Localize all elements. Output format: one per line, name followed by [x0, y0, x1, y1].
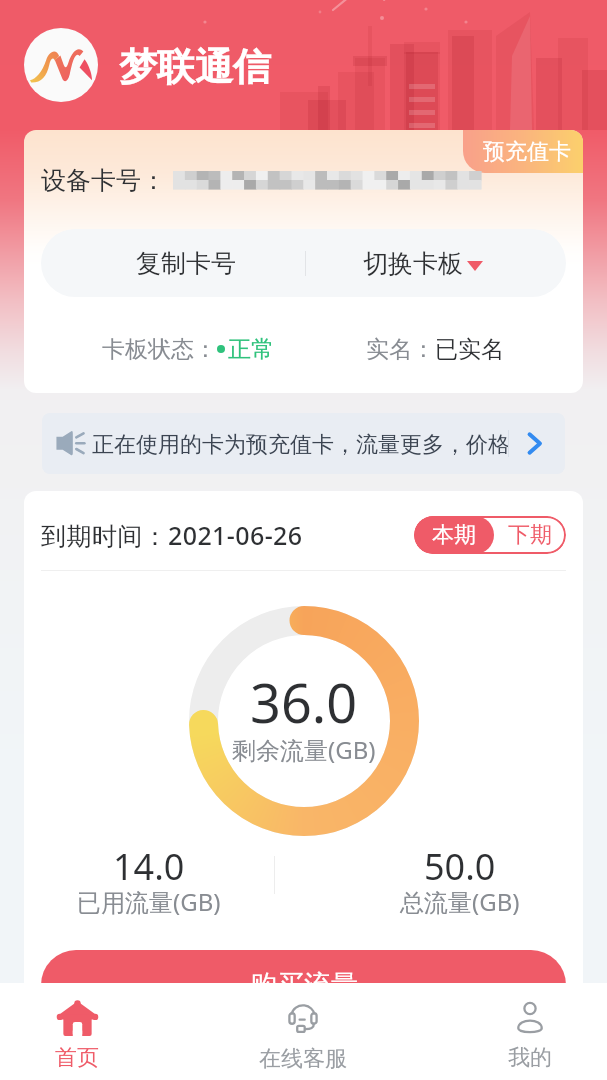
staticText: 总流量(GB) [400, 885, 520, 918]
staticText: 下期 [508, 521, 552, 549]
staticText: 到期时间：2021-06-26 [41, 518, 303, 552]
button[interactable]: 在线客服 [253, 983, 353, 1080]
button[interactable]: 切换卡板 [304, 229, 566, 297]
button[interactable]: 本期 [414, 516, 494, 554]
staticText: 在线客服 [259, 1045, 347, 1073]
staticText: 购买流量 [250, 968, 358, 1001]
staticText: 已用流量(GB) [77, 885, 221, 918]
staticText: 实名： [366, 335, 435, 363]
button[interactable]: 下期 [494, 516, 566, 554]
staticText: 设备卡号： [41, 165, 166, 196]
button[interactable]: 正在使用的卡为预充值卡，流量更多，价格 [42, 413, 565, 474]
staticText: 36.0 [250, 665, 358, 739]
staticText: 正在使用的卡为预充值卡，流量更多，价格 [92, 431, 510, 459]
staticText: 剩余流量(GB) [232, 733, 376, 766]
staticText: 梦联通信 [119, 43, 271, 91]
staticText: 我的 [508, 1044, 552, 1072]
button[interactable]: 复制卡号 [41, 229, 303, 297]
button[interactable]: 首页 [27, 983, 127, 1080]
staticText: 正常 [228, 335, 274, 363]
staticText: 切换卡板 [363, 248, 463, 279]
button[interactable]: 我的 [480, 983, 580, 1080]
other: More [528, 433, 541, 454]
staticText: 14.0 [113, 842, 185, 891]
staticText: 首页 [55, 1044, 99, 1072]
staticText: 卡板状态： [102, 335, 217, 363]
staticText: 本期 [432, 521, 476, 549]
staticText: 50.0 [424, 842, 496, 891]
staticText: 已实名 [435, 335, 504, 363]
button[interactable]: 购买流量 [41, 950, 566, 1001]
staticText: 复制卡号 [136, 248, 236, 279]
staticText: 预充值卡 [483, 138, 571, 166]
button[interactable]: 预充值卡 [463, 130, 583, 173]
